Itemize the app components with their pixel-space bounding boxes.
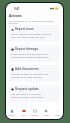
staticText: Actions — [9, 13, 22, 18]
button[interactable]: Home — [6, 108, 17, 117]
other: Home — [10, 109, 14, 113]
staticText: Request update — [15, 87, 39, 91]
button[interactable]: Scan — [18, 108, 29, 117]
staticText: Orders — [31, 114, 38, 117]
staticText: Share details and photos of the damaged … — [11, 52, 49, 58]
staticText: Saved — [43, 114, 49, 117]
staticText: Upload receipts or invoices that support… — [11, 72, 49, 80]
other: Orders — [33, 109, 37, 113]
staticText: 9:41 — [14, 7, 20, 10]
staticText: Report damage — [15, 47, 39, 51]
button[interactable]: Report issue — [9, 25, 60, 42]
other: Scan — [22, 109, 26, 113]
other: More — [56, 109, 60, 113]
staticText: Add documents — [15, 67, 39, 71]
other: Saved — [44, 109, 48, 113]
staticText: Home — [9, 114, 15, 117]
button[interactable]: More — [52, 108, 63, 117]
staticText: More — [55, 114, 60, 117]
button[interactable]: Request update — [9, 85, 60, 102]
button[interactable]: Add documents — [9, 65, 60, 82]
staticText: Ask the seller for a status update on yo… — [11, 92, 45, 98]
button[interactable]: Orders — [29, 108, 40, 117]
button[interactable]: Saved — [40, 108, 51, 117]
staticText: Scan — [21, 114, 26, 117]
staticText: Choose what to do with this damaged prod… — [9, 19, 54, 25]
staticText: Report issue — [15, 27, 34, 31]
button[interactable]: Report damage — [9, 45, 60, 62]
staticText: Let us know if something is wrong with t… — [11, 32, 52, 40]
